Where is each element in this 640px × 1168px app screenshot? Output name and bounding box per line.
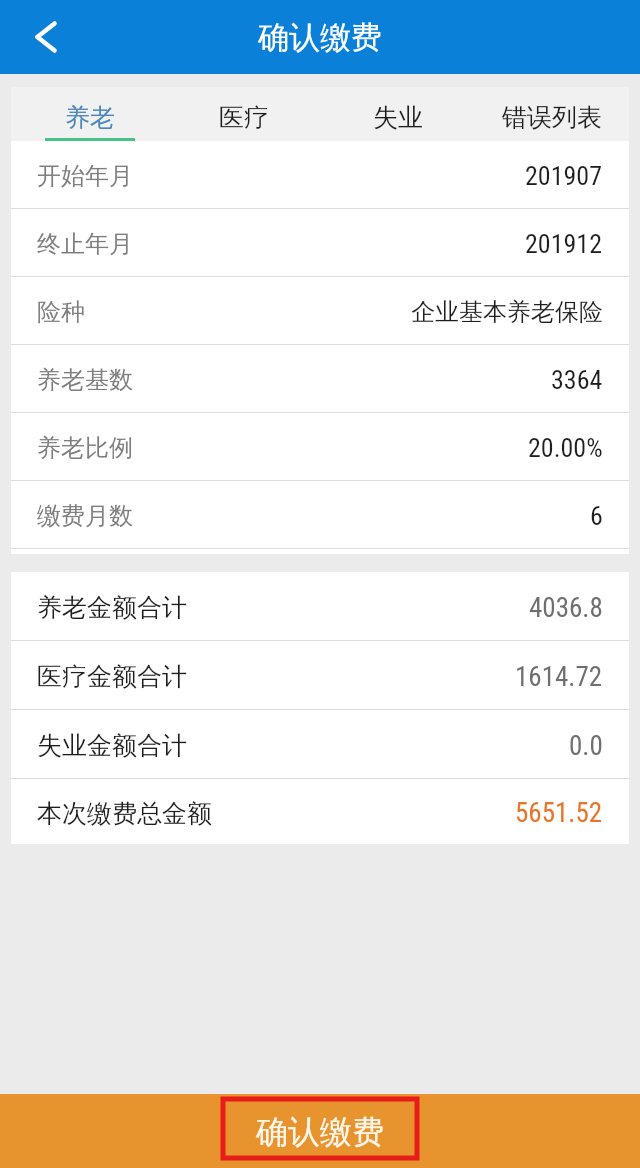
staticText: 错误列表 xyxy=(502,102,602,133)
staticText: 失业 xyxy=(373,102,423,133)
button[interactable]: 失业 xyxy=(321,87,475,141)
staticText: 201907 xyxy=(525,161,603,191)
staticText: 险种 xyxy=(37,297,85,327)
button[interactable]: 养老 xyxy=(13,87,167,141)
button[interactable]: 医疗金额合计 xyxy=(11,641,629,709)
staticText: 6 xyxy=(590,501,603,531)
staticText: 确认缴费 xyxy=(258,18,382,57)
staticText: 终止年月 xyxy=(37,229,133,259)
staticText: 失业金额合计 xyxy=(37,730,187,761)
button[interactable]: 错误列表 xyxy=(475,87,629,141)
staticText: 养老 xyxy=(65,102,115,133)
staticText: 3364 xyxy=(551,365,603,395)
staticText: 企业基本养老保险 xyxy=(411,297,603,327)
staticText: 确认缴费 xyxy=(256,1112,384,1152)
staticText: 医疗金额合计 xyxy=(37,661,187,692)
button[interactable]: 险种 xyxy=(11,277,629,344)
staticText: 5651.52 xyxy=(515,797,603,829)
button[interactable]: 开始年月 xyxy=(11,141,629,208)
staticText: 养老比例 xyxy=(37,433,133,463)
button[interactable]: 终止年月 xyxy=(11,209,629,276)
staticText: 0.0 xyxy=(569,730,603,762)
staticText: 养老金额合计 xyxy=(37,592,187,623)
button[interactable]: 医疗 xyxy=(167,87,321,141)
staticText: 20.00% xyxy=(528,433,603,463)
staticText: 本次缴费总金额 xyxy=(37,798,212,829)
button[interactable]: 养老金额合计 xyxy=(11,572,629,640)
staticText: 医疗 xyxy=(219,102,269,133)
staticText: 4036.8 xyxy=(529,592,603,624)
button[interactable]: 养老基数 xyxy=(11,345,629,412)
button[interactable]: Back xyxy=(23,14,69,60)
button[interactable]: 养老比例 xyxy=(11,413,629,480)
button[interactable]: 失业金额合计 xyxy=(11,710,629,778)
staticText: 养老基数 xyxy=(37,365,133,395)
staticText: 缴费月数 xyxy=(37,501,133,531)
button[interactable]: 缴费月数 xyxy=(11,481,629,548)
staticText: 开始年月 xyxy=(37,161,133,191)
staticText: 1614.72 xyxy=(515,661,603,693)
button[interactable]: 本次缴费总金额 xyxy=(11,779,629,844)
button[interactable]: 确认缴费 xyxy=(0,1094,640,1168)
staticText: 201912 xyxy=(525,229,603,259)
